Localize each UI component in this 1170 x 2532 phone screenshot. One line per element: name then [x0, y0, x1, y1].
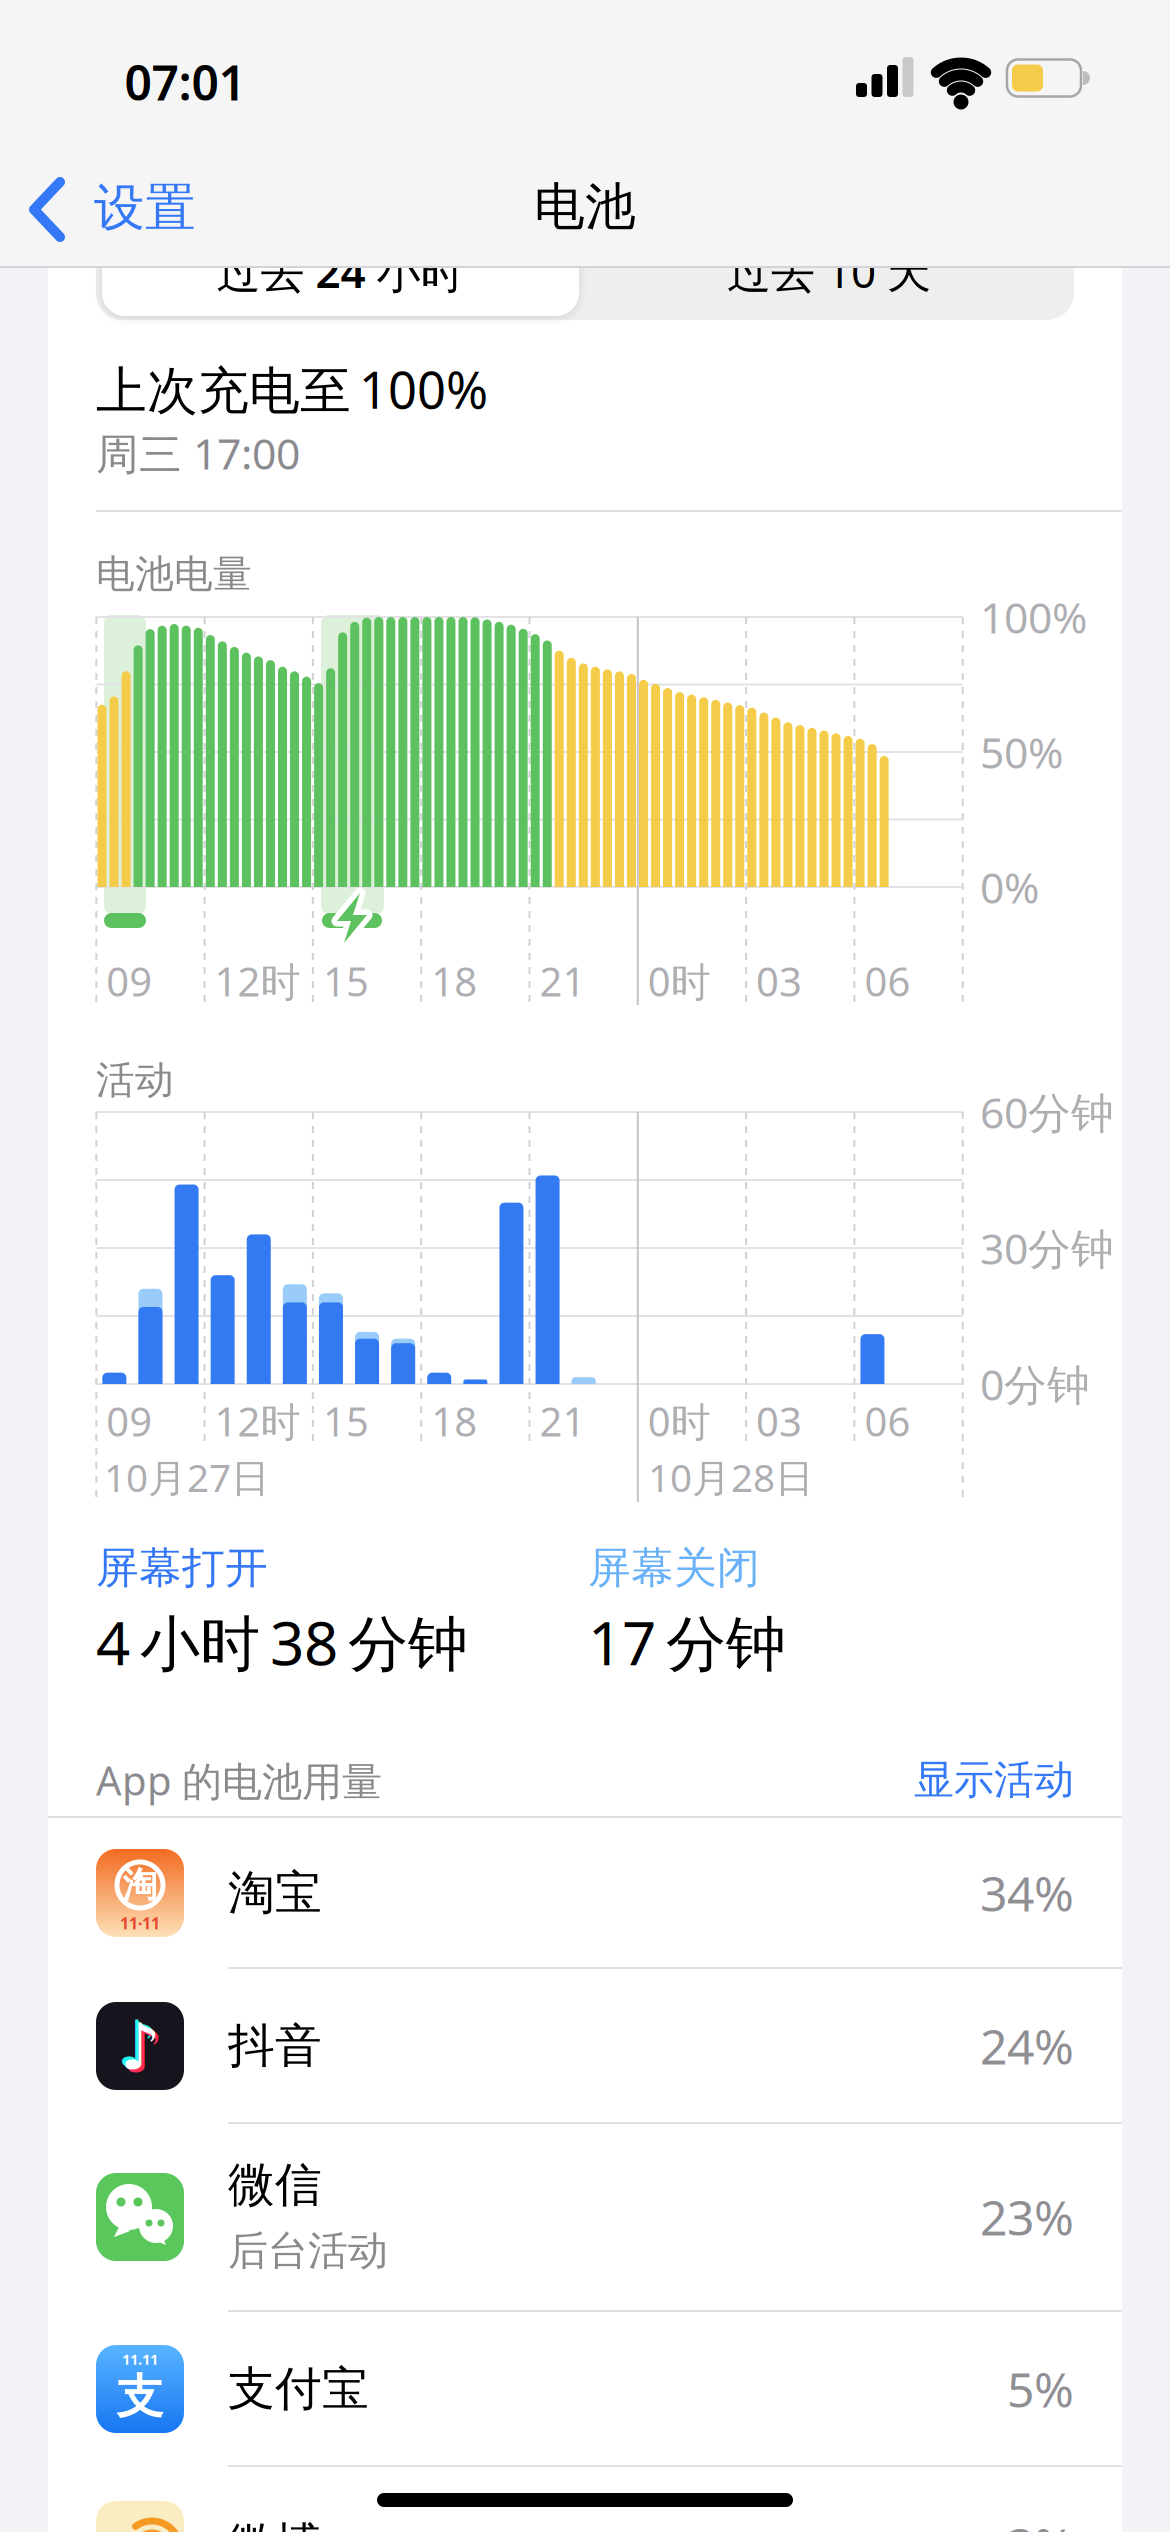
- staticText: 07:01: [124, 50, 245, 114]
- staticText: 上次充电至 100%: [96, 355, 488, 423]
- staticText: 0%: [980, 859, 1039, 915]
- staticText: 淘: [122, 1864, 157, 1906]
- staticText: 12时: [215, 1394, 301, 1447]
- staticText: 过去 24 小时: [216, 242, 464, 300]
- staticText: 支: [116, 2368, 163, 2426]
- staticText: ♪: [119, 2011, 160, 2083]
- staticText: 06: [864, 954, 910, 1007]
- staticText: 15: [323, 954, 369, 1007]
- staticText: ♪: [122, 2014, 163, 2086]
- staticText: 微博: [228, 2516, 322, 2532]
- staticText: 5%: [1007, 2357, 1074, 2421]
- staticText: 过去 10 天: [727, 242, 931, 300]
- staticText: 11·11: [120, 1912, 160, 1934]
- staticText: 34%: [980, 1861, 1074, 1925]
- staticText: 0时: [648, 1394, 711, 1447]
- staticText: 抖音: [228, 2017, 322, 2075]
- staticText: 4 小时 38 分钟: [96, 1602, 468, 1682]
- staticText: 设置: [94, 177, 196, 239]
- staticText: 0时: [648, 954, 711, 1007]
- button[interactable]: 显示活动: [774, 1755, 1074, 1804]
- staticText: 10月27日: [104, 1451, 270, 1503]
- staticText: 0分钟: [980, 1356, 1090, 1412]
- staticText: 周三 17:00: [96, 425, 300, 481]
- staticText: 18: [431, 1394, 477, 1447]
- staticText: 屏幕打开: [96, 1542, 268, 1594]
- staticText: 15: [323, 1394, 369, 1447]
- staticText: 屏幕关闭: [588, 1542, 760, 1594]
- staticText: 淘宝: [228, 1864, 322, 1922]
- staticText: 后台活动: [228, 2226, 388, 2275]
- staticText: 电池电量: [96, 550, 252, 598]
- staticText: 60分钟: [980, 1084, 1114, 1140]
- button[interactable]: 过去 10 天: [590, 226, 1067, 316]
- staticText: 06: [864, 1394, 910, 1447]
- staticText: 21: [539, 954, 585, 1007]
- button[interactable]: 淘: [48, 1818, 1122, 1968]
- staticText: 30分钟: [980, 1220, 1114, 1276]
- staticText: App 的电池用量: [96, 1753, 382, 1807]
- button[interactable]: ♪: [48, 1971, 1122, 2121]
- button[interactable]: 设置: [0, 163, 230, 253]
- staticText: 12时: [215, 954, 301, 1007]
- staticText: 11.11: [122, 2349, 158, 2369]
- button[interactable]: 过去 24 小时: [102, 226, 579, 316]
- button[interactable]: 11.11: [48, 2314, 1122, 2464]
- staticText: 09: [106, 1394, 152, 1447]
- staticText: 50%: [980, 724, 1063, 780]
- staticText: 3%: [1007, 2513, 1074, 2532]
- staticText: 10月28日: [648, 1451, 814, 1503]
- staticText: 18: [431, 954, 477, 1007]
- staticText: 微信: [228, 2156, 322, 2214]
- staticText: 17 分钟: [588, 1602, 786, 1682]
- staticText: 21: [539, 1394, 585, 1447]
- staticText: 03: [756, 1394, 802, 1447]
- staticText: 03: [756, 954, 802, 1007]
- staticText: 23%: [980, 2185, 1074, 2249]
- button[interactable]: 微信: [48, 2142, 1122, 2292]
- staticText: 100%: [980, 589, 1087, 645]
- staticText: ♪: [116, 2008, 157, 2080]
- staticText: 活动: [96, 1056, 174, 1104]
- button[interactable]: 微博: [48, 2470, 1122, 2532]
- staticText: 24%: [980, 2014, 1074, 2078]
- staticText: 显示活动: [914, 1755, 1074, 1804]
- staticText: 09: [106, 954, 152, 1007]
- staticText: 电池: [534, 176, 636, 238]
- staticText: 支付宝: [228, 2360, 369, 2418]
